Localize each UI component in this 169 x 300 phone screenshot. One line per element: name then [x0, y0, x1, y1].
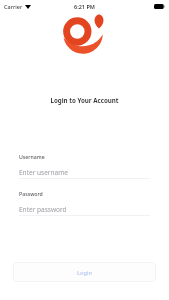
- staticText: Login: [77, 269, 92, 276]
- staticText: 6:21 PM: [74, 3, 95, 10]
- staticText: Password: [19, 190, 43, 197]
- button[interactable]: Enter username: [19, 166, 150, 178]
- staticText: Enter password: [19, 205, 67, 214]
- staticText: Carrier: [4, 3, 23, 10]
- staticText: Username: [19, 153, 45, 160]
- staticText: Enter username: [19, 168, 68, 177]
- button[interactable]: Enter password: [19, 203, 150, 215]
- button[interactable]: Login: [13, 262, 156, 282]
- staticText: Login to Your Account: [0, 96, 169, 104]
